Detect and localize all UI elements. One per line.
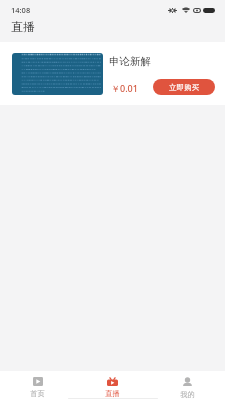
button[interactable]: 立即购买	[153, 79, 215, 95]
button[interactable]: 首页	[0, 371, 75, 400]
staticText: 立即购买	[169, 83, 199, 92]
staticText: 申论新解	[109, 55, 151, 68]
button[interactable]: 我的	[150, 371, 225, 400]
staticText: 我的	[180, 390, 195, 399]
staticText: 首页	[30, 389, 45, 398]
button[interactable]: 申论新解	[0, 42, 225, 105]
button[interactable]: 直播	[75, 371, 150, 400]
staticText: ￥0.01	[111, 82, 138, 94]
staticText: 14:08	[11, 5, 31, 15]
staticText: 直播	[11, 19, 35, 34]
staticText: 直播	[105, 389, 120, 398]
